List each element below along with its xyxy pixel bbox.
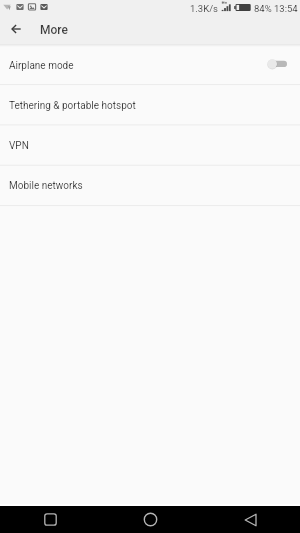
staticText: Mobile networks	[9, 180, 83, 192]
button[interactable]: Tethering & portable hotspot	[0, 84, 300, 124]
button[interactable]: Airplane mode	[0, 44, 300, 84]
button[interactable]: VPN	[0, 124, 300, 164]
button[interactable]: Recents	[0, 506, 100, 533]
button[interactable]: Home	[100, 506, 200, 533]
staticText: Airplane mode	[9, 60, 74, 72]
staticText: Tethering & portable hotspot	[9, 100, 136, 112]
button[interactable]: Back	[0, 16, 31, 44]
button[interactable]: Back	[200, 506, 300, 533]
staticText: More	[40, 23, 68, 37]
staticText: 1.3K/s	[190, 3, 218, 14]
staticText: 84% 13:54	[254, 3, 298, 14]
staticText: VPN	[9, 140, 29, 152]
button[interactable]: Mobile networks	[0, 164, 300, 204]
